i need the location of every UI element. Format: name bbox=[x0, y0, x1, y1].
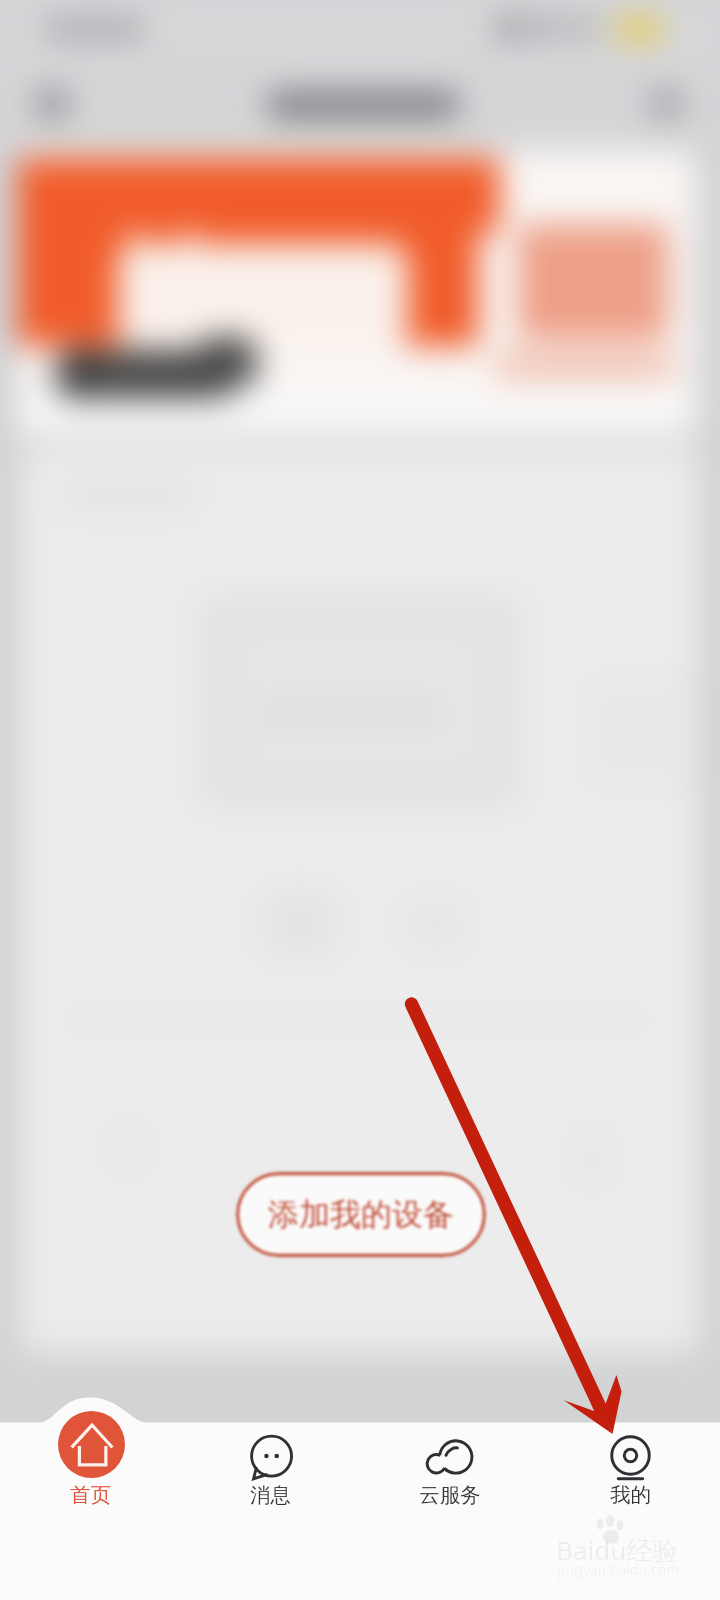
staticText: 云服务 bbox=[419, 1482, 481, 1508]
staticText: 添加我的设备 bbox=[268, 1195, 454, 1234]
button[interactable]: 首页 bbox=[58, 1411, 125, 1478]
button[interactable]: 我的 bbox=[540, 1422, 720, 1600]
button[interactable]: 首页 bbox=[0, 1422, 180, 1600]
staticText: Baidu经验 bbox=[556, 1532, 679, 1568]
staticText: 我的 bbox=[610, 1482, 651, 1508]
button[interactable]: 消息 bbox=[180, 1422, 360, 1600]
button[interactable]: 添加我的设备 bbox=[236, 1172, 486, 1257]
staticText: 消息 bbox=[250, 1482, 291, 1508]
staticText: 首页 bbox=[70, 1482, 111, 1508]
button[interactable]: 云服务 bbox=[360, 1422, 540, 1600]
staticText: jingyan.baidu.com bbox=[558, 1560, 680, 1579]
